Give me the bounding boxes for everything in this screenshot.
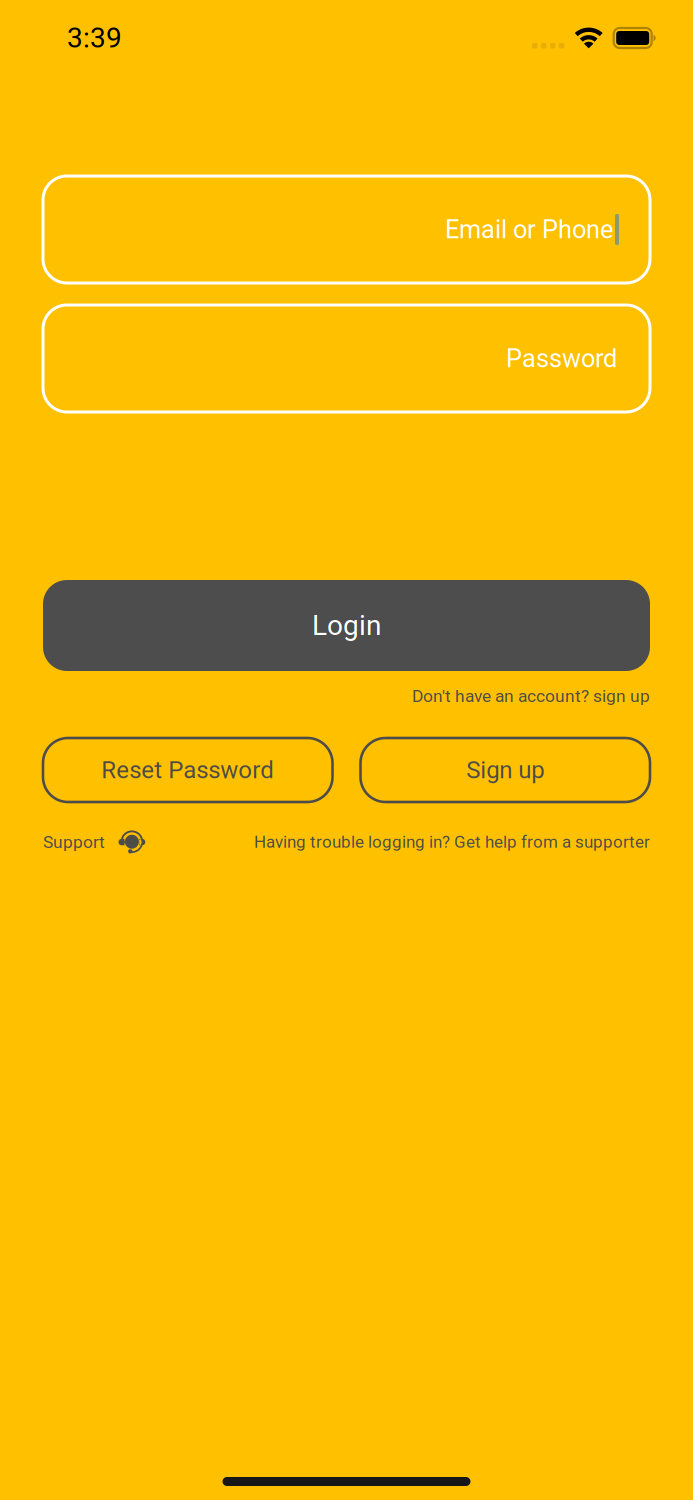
button[interactable]: Password <box>43 305 650 412</box>
staticText: Password <box>506 344 617 373</box>
button[interactable]: Email or Phone <box>43 176 650 283</box>
button[interactable]: Login <box>43 580 650 671</box>
staticText: 3:39 <box>67 22 122 54</box>
staticText: Don't have an account? sign up <box>412 686 650 706</box>
staticText: Sign up <box>466 756 544 784</box>
button[interactable]: Sign up <box>360 738 650 802</box>
staticText: Reset Password <box>101 756 274 784</box>
staticText: Support <box>43 832 105 852</box>
staticText: Login <box>312 609 381 642</box>
button[interactable]: Don't have an account? sign up <box>412 686 650 706</box>
staticText: Having trouble logging in? Get help from… <box>254 832 650 852</box>
button[interactable]: Having trouble logging in? Get help from… <box>254 832 650 852</box>
button[interactable]: Reset Password <box>43 738 332 802</box>
button[interactable]: Support <box>43 830 146 853</box>
staticText: Email or Phone <box>445 215 613 244</box>
